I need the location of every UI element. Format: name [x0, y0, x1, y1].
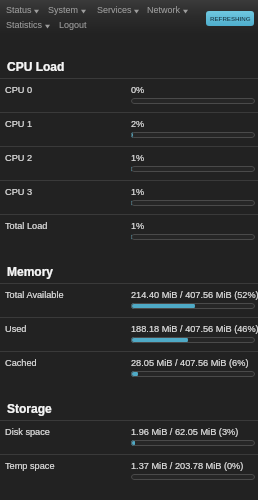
staticText: Network — [147, 5, 181, 15]
staticText: CPU 0 — [5, 85, 33, 95]
staticText: Logout — [59, 20, 87, 30]
button[interactable]: System — [48, 2, 86, 17]
staticText: System — [48, 5, 79, 15]
staticText: 1.96 MiB / 62.05 MiB (3%) — [131, 427, 239, 437]
staticText: Disk space — [5, 427, 50, 437]
staticText: 214.40 MiB / 407.56 MiB (52%) — [131, 290, 258, 300]
staticText: Storage — [7, 402, 52, 415]
staticText: 0% — [131, 85, 145, 95]
staticText: 1.37 MiB / 203.78 MiB (0%) — [131, 461, 244, 471]
button[interactable]: Total Available — [0, 284, 258, 317]
staticText: CPU 2 — [5, 153, 33, 163]
staticText: Used — [5, 324, 27, 334]
button[interactable]: Statistics — [6, 17, 50, 32]
staticText: Cached — [5, 358, 37, 368]
button[interactable]: Temp space — [0, 455, 258, 488]
staticText: REFRESHING — [210, 15, 251, 22]
button[interactable]: CPU 3 — [0, 181, 258, 214]
staticText: CPU Load — [7, 60, 65, 73]
button[interactable]: Status — [6, 2, 39, 17]
button[interactable]: Total Load — [0, 215, 258, 248]
staticText: 28.05 MiB / 407.56 MiB (6%) — [131, 358, 249, 368]
button[interactable]: Used — [0, 318, 258, 351]
button[interactable]: Services — [97, 2, 139, 17]
staticText: Total Available — [5, 290, 64, 300]
staticText: 188.18 MiB / 407.56 MiB (46%) — [131, 324, 258, 334]
button[interactable]: Disk space — [0, 421, 258, 454]
staticText: 1% — [131, 153, 145, 163]
button[interactable]: CPU 1 — [0, 113, 258, 146]
staticText: Memory — [7, 265, 54, 278]
button[interactable]: CPU 0 — [0, 79, 258, 112]
button[interactable]: Network — [147, 2, 188, 17]
button[interactable]: REFRESHING — [206, 11, 254, 26]
staticText: Status — [6, 5, 32, 15]
staticText: 1% — [131, 221, 145, 231]
staticText: 2% — [131, 119, 145, 129]
staticText: Temp space — [5, 461, 55, 471]
staticText: 1% — [131, 187, 145, 197]
button[interactable]: Cached — [0, 352, 258, 385]
staticText: CPU 1 — [5, 119, 33, 129]
staticText: Total Load — [5, 221, 48, 231]
staticText: Services — [97, 5, 132, 15]
staticText: CPU 3 — [5, 187, 33, 197]
button[interactable]: CPU 2 — [0, 147, 258, 180]
staticText: Statistics — [6, 20, 43, 30]
button[interactable]: Logout — [59, 17, 87, 32]
